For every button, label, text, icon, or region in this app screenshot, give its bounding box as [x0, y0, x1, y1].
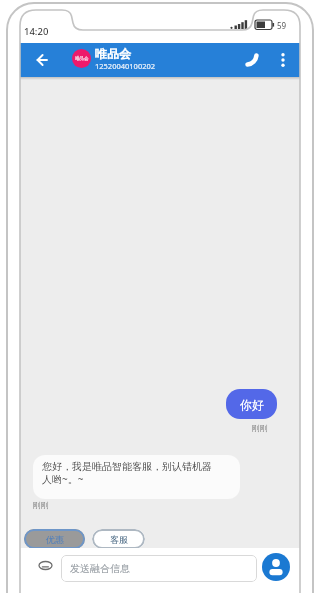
- button[interactable]: 您好，我是唯品智能客服，别认错机器 人哟~。~: [33, 455, 240, 499]
- staticText: 发送融合信息: [70, 562, 130, 575]
- button[interactable]: [244, 52, 260, 68]
- button[interactable]: 发送融合信息: [61, 555, 257, 582]
- staticText: 刚刚: [252, 423, 268, 433]
- staticText: 12520040100202: [95, 61, 156, 71]
- button[interactable]: [262, 553, 290, 581]
- staticText: 刚刚: [33, 500, 49, 510]
- staticText: 唯品会: [75, 56, 89, 62]
- button[interactable]: 优惠: [24, 529, 85, 549]
- button[interactable]: [278, 53, 288, 67]
- button[interactable]: [38, 558, 53, 573]
- button[interactable]: 唯品会: [95, 46, 156, 71]
- button[interactable]: [35, 53, 49, 67]
- staticText: 优惠: [46, 534, 64, 545]
- staticText: 客服: [110, 534, 128, 545]
- staticText: 您好，我是唯品智能客服，别认错机器 人哟~。~: [42, 460, 212, 486]
- button[interactable]: 你好: [226, 389, 277, 419]
- staticText: 唯品会: [95, 46, 131, 61]
- staticText: 你好: [240, 397, 264, 412]
- staticText: 59: [277, 20, 287, 31]
- staticText: 14:20: [24, 25, 49, 38]
- button[interactable]: 客服: [92, 529, 145, 549]
